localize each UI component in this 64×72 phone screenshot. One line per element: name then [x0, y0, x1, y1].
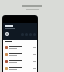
button[interactable]	[3, 58, 37, 65]
button[interactable]: Control 3	[33, 33, 36, 36]
button[interactable]: Control 2	[29, 33, 32, 36]
button[interactable]: Control 0	[21, 33, 24, 36]
button[interactable]	[3, 51, 37, 58]
button[interactable]: Control 1	[25, 33, 28, 36]
button[interactable]: Play	[5, 32, 9, 36]
button[interactable]	[3, 44, 37, 51]
button[interactable]	[3, 65, 37, 72]
